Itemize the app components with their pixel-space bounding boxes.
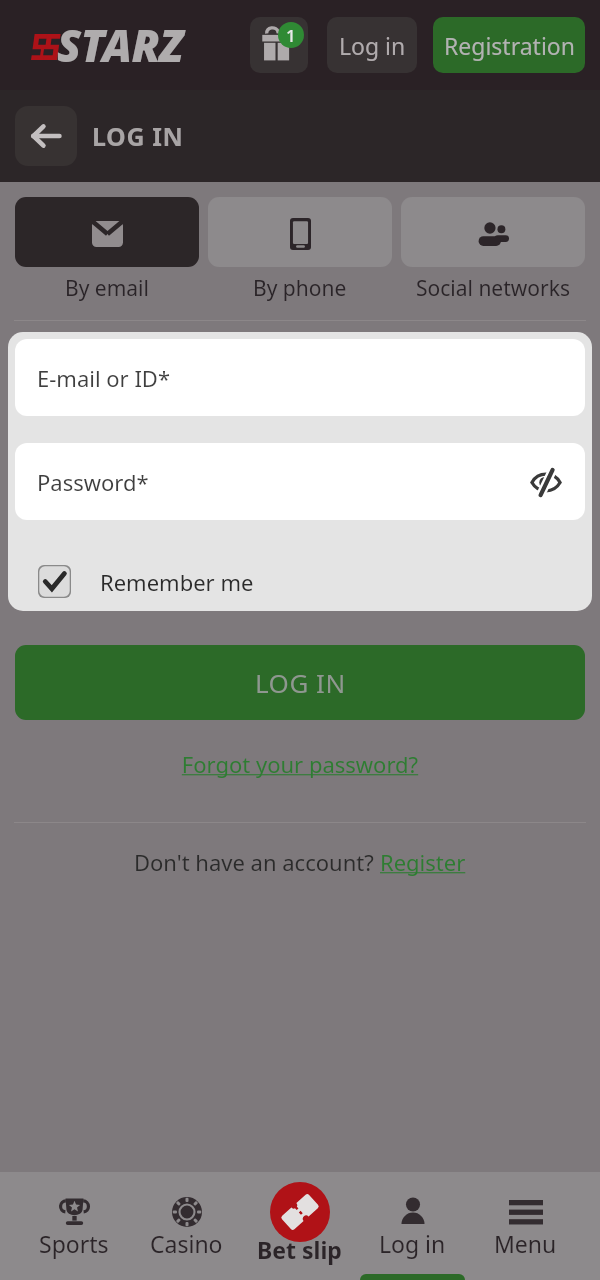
button[interactable]: E-mail or ID* [15, 339, 585, 416]
button[interactable]: By phone [208, 197, 392, 303]
staticText: Bet slip [257, 1234, 342, 1265]
staticText: LOG IN [255, 665, 346, 700]
staticText: Menu [494, 1228, 557, 1259]
staticText: E-mail or ID* [37, 363, 171, 393]
staticText: LOG IN [92, 119, 184, 153]
staticText: Remember me [100, 567, 254, 597]
staticText: 1 [286, 24, 296, 47]
button[interactable]: Menu [469, 1172, 582, 1280]
button[interactable]: Register [380, 847, 466, 877]
staticText: By phone [253, 274, 347, 303]
staticText: Log in [339, 30, 406, 61]
staticText: Password* [37, 467, 149, 497]
staticText: Sports [39, 1228, 109, 1259]
button[interactable]: Log in [356, 1172, 469, 1280]
button[interactable]: Log in [327, 17, 417, 73]
button[interactable]: By email [15, 197, 199, 303]
button[interactable]: Show password [524, 460, 568, 504]
button[interactable]: Forgot your password? [0, 749, 600, 779]
staticText: Casino [150, 1228, 223, 1259]
button[interactable]: Bet slip [270, 1182, 330, 1242]
staticText: By email [65, 274, 149, 303]
staticText: Log in [379, 1228, 446, 1259]
staticText: STARZ [57, 15, 183, 75]
button[interactable]: Social networks [401, 197, 585, 303]
staticText: Don't have an account? [134, 847, 380, 877]
button[interactable]: Back [15, 106, 77, 166]
staticText: Social networks [416, 274, 570, 303]
staticText: Registration [444, 30, 575, 61]
button[interactable]: LOG IN [15, 645, 585, 720]
button[interactable]: Registration [433, 17, 585, 73]
button[interactable]: Sports [18, 1172, 130, 1280]
button[interactable]: Remember me [38, 559, 585, 604]
button[interactable]: Bet slip [243, 1172, 356, 1280]
button[interactable]: Bonuses [250, 17, 308, 73]
button[interactable]: Casino [130, 1172, 243, 1280]
button[interactable]: Password* [15, 443, 585, 520]
